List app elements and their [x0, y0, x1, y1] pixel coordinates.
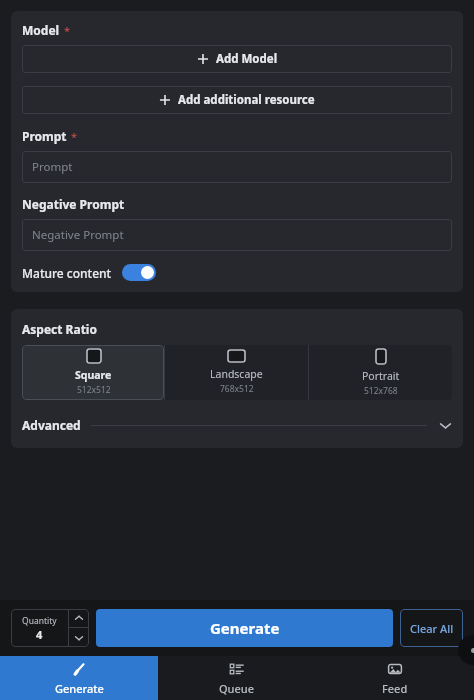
staticText: Mature content: [22, 265, 112, 281]
staticText: *: [64, 23, 71, 38]
button[interactable]: Clear All: [400, 609, 463, 647]
button[interactable]: Advanced: [22, 414, 452, 436]
staticText: Negative Prompt: [22, 196, 125, 212]
other: Generate: [72, 661, 88, 677]
button[interactable]: Add additional resource: [22, 86, 452, 114]
staticText: Feed: [382, 681, 408, 696]
button[interactable]: Feed: [316, 656, 474, 700]
staticText: Generate: [55, 681, 104, 696]
staticText: Add Model: [216, 51, 278, 67]
button[interactable]: Portrait: [309, 345, 452, 400]
staticText: Negative Prompt: [32, 227, 124, 243]
staticText: 512x768: [364, 385, 398, 397]
button[interactable]: More: [458, 635, 474, 665]
staticText: Queue: [219, 681, 255, 696]
staticText: 4: [36, 627, 43, 642]
staticText: Quantity: [22, 615, 57, 627]
staticText: *: [71, 129, 78, 144]
staticText: Clear All: [410, 621, 454, 636]
button[interactable]: Quantity: [11, 609, 89, 647]
button[interactable]: Landscape: [165, 345, 308, 400]
staticText: Generate: [210, 618, 280, 638]
button[interactable]: Mature content: [22, 264, 156, 281]
button[interactable]: Increase quantity: [69, 609, 89, 627]
button[interactable]: Generate: [0, 656, 158, 700]
staticText: Portrait: [362, 369, 400, 383]
staticText: Add additional resource: [178, 92, 315, 108]
staticText: Landscape: [210, 367, 263, 381]
button[interactable]: Negative Prompt: [22, 219, 452, 251]
staticText: Advanced: [22, 417, 81, 433]
staticText: Aspect Ratio: [22, 321, 97, 337]
staticText: 512x512: [77, 384, 111, 396]
button[interactable]: Decrease quantity: [69, 628, 89, 647]
button[interactable]: Queue: [158, 656, 316, 700]
staticText: Prompt: [32, 159, 73, 175]
button[interactable]: Add Model: [22, 45, 452, 73]
other: Queue: [229, 661, 245, 677]
button[interactable]: Square: [22, 345, 164, 400]
staticText: Prompt: [22, 128, 67, 144]
staticText: 768x512: [220, 383, 254, 395]
other: Feed: [387, 661, 403, 677]
staticText: Square: [75, 368, 112, 382]
button[interactable]: Prompt: [22, 151, 452, 183]
staticText: Model: [22, 22, 60, 38]
button[interactable]: Generate: [96, 609, 393, 647]
